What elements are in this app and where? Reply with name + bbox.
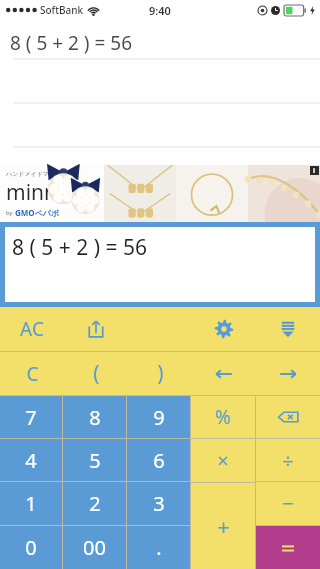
staticText: 9 (153, 404, 165, 431)
button[interactable]: 6 (127, 439, 190, 481)
button[interactable]: 9 (127, 396, 190, 438)
staticText: GMOペパボ (15, 207, 60, 218)
button[interactable]: 4 (0, 439, 62, 481)
button[interactable]: + (191, 483, 255, 569)
button[interactable]: Move right (256, 352, 320, 395)
staticText: SoftBank (40, 3, 84, 17)
button[interactable]: 0 (0, 526, 62, 569)
button[interactable]: 5 (63, 439, 126, 481)
button[interactable]: 3 (127, 482, 190, 525)
staticText: 6 (153, 447, 165, 474)
staticText: ÷ (282, 447, 294, 474)
button[interactable]: 2 (63, 482, 126, 525)
button[interactable]: Share (64, 307, 128, 351)
staticText: AC (20, 316, 44, 342)
staticText: ) (157, 359, 164, 388)
staticText: 8 (89, 404, 101, 431)
button[interactable]: ÷ (256, 439, 320, 481)
staticText: 8 ( 5 + 2 ) = 56 (10, 30, 133, 56)
button[interactable]: C (0, 352, 64, 395)
button[interactable]: Move left (192, 352, 256, 395)
staticText: by (6, 209, 15, 217)
staticText: + (217, 511, 230, 541)
button[interactable]: ) (128, 352, 192, 395)
button[interactable]: 8 (63, 396, 126, 438)
button[interactable]: ( (64, 352, 128, 395)
staticText: 7 (25, 404, 37, 431)
staticText: ( (93, 359, 100, 388)
button[interactable]: Hide keyboard (256, 307, 320, 351)
button[interactable]: Advertisement minne (0, 165, 320, 222)
button[interactable]: 7 (0, 396, 62, 438)
staticText: 5 (89, 447, 101, 474)
button[interactable]: Equals (256, 526, 320, 569)
staticText: 8 ( 5 + 2 ) = 56 (12, 233, 147, 262)
staticText: 1 (25, 490, 37, 517)
staticText: i (313, 166, 316, 175)
button[interactable]: − (256, 482, 320, 525)
staticText: 9:40 (149, 3, 171, 18)
button[interactable]: % (191, 396, 255, 438)
staticText: 2 (89, 490, 101, 517)
staticText: 00 (83, 534, 106, 561)
button[interactable]: Settings (192, 307, 256, 351)
staticText: % (215, 404, 231, 430)
button[interactable]: 1 (0, 482, 62, 525)
staticText: minne (6, 178, 69, 207)
button[interactable]: AC (0, 307, 64, 351)
staticText: 4 (25, 447, 37, 474)
staticText: 3 (153, 490, 165, 517)
staticText: − (282, 490, 294, 517)
staticText: C (26, 361, 39, 387)
button[interactable]: 00 (63, 526, 126, 569)
staticText: ハンドメイドマーケット (6, 170, 74, 178)
staticText: × (217, 447, 229, 474)
button[interactable]: Backspace (256, 396, 320, 438)
button[interactable]: . (127, 526, 190, 569)
staticText: 0 (25, 534, 37, 561)
button[interactable]: 8 ( 5 + 2 ) = 56 (5, 227, 315, 302)
staticText: . (156, 534, 162, 561)
button[interactable]: × (191, 439, 255, 482)
